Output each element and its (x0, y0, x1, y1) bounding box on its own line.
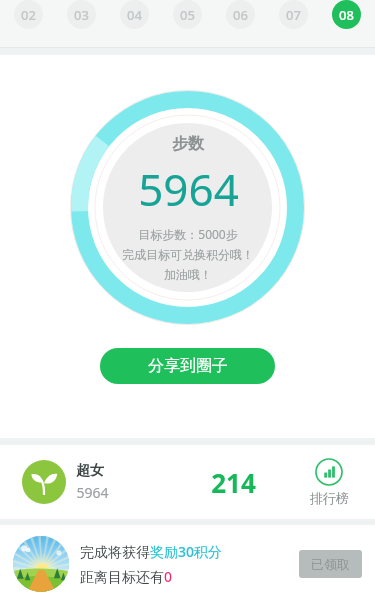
staticText: 完成目标可兑换积分哦！ (122, 247, 254, 262)
staticText: 02 (21, 6, 36, 24)
button[interactable]: 排行榜 Leaderboard (283, 458, 375, 506)
staticText: 214 (211, 465, 256, 500)
staticText: 步数 (172, 134, 204, 154)
button[interactable]: 04 (120, 0, 149, 29)
staticText: 目标步数：5000步 (138, 226, 238, 242)
staticText: 已领取 (311, 556, 350, 572)
staticText: 分享到圈子 (148, 356, 228, 376)
staticText: 05 (180, 6, 195, 24)
staticText: 距离目标还有0 (80, 567, 173, 586)
button[interactable]: 超女 (22, 460, 183, 504)
staticText: 加油哦！ (164, 267, 212, 282)
button[interactable]: 08 (332, 0, 361, 29)
staticText: 5964 (76, 483, 109, 502)
staticText: 03 (74, 6, 89, 24)
staticText: 排行榜 (310, 490, 349, 506)
button[interactable]: 05 (173, 0, 202, 29)
button[interactable]: 07 (279, 0, 308, 29)
staticText: 08 (339, 6, 354, 24)
staticText: 04 (127, 6, 142, 24)
staticText: 5964 (138, 159, 239, 219)
staticText: 超女 (76, 462, 104, 480)
button[interactable]: 06 (226, 0, 255, 29)
button[interactable]: 02 (14, 0, 43, 29)
staticText: 07 (286, 6, 301, 24)
staticText: 完成将获得奖励30积分 (80, 542, 223, 561)
staticText: 06 (233, 6, 248, 24)
button[interactable]: 已领取 (299, 550, 362, 578)
button[interactable]: 03 (67, 0, 96, 29)
button[interactable]: 分享到圈子 (100, 348, 275, 384)
